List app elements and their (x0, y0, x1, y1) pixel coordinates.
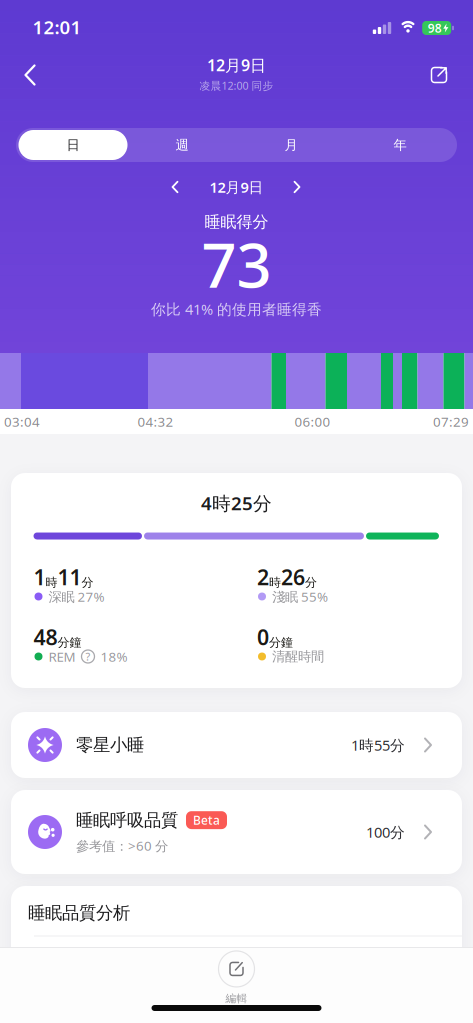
staticText: 1時55分 (351, 735, 405, 755)
staticText: 睡眠品質分析 (28, 902, 130, 924)
staticText: 0分鐘 (257, 623, 293, 651)
staticText: 淺眠 55% (272, 588, 328, 605)
button[interactable]: Share (422, 58, 455, 91)
staticText: ? (85, 649, 90, 664)
button[interactable]: 睡眠呼吸品質 (11, 790, 462, 874)
staticText: 18% (100, 648, 127, 665)
staticText: 2時26分 (257, 563, 317, 591)
staticText: 深眠 27% (48, 588, 104, 605)
staticText: 12月9日 (209, 177, 263, 197)
staticText: 12:01 (32, 15, 81, 39)
button[interactable]: 編輯 (218, 951, 254, 1005)
staticText: 零星小睡 (76, 734, 144, 756)
button[interactable]: 年 (345, 130, 454, 160)
staticText: 睡眠呼吸品質 (76, 809, 178, 831)
staticText: 參考值：>60 分 (76, 837, 168, 854)
staticText: 06:00 (294, 413, 330, 430)
button[interactable]: 日 (18, 130, 127, 160)
staticText: 1時11分 (33, 563, 93, 591)
staticText: 週 (175, 137, 188, 153)
staticText: REM (48, 648, 75, 665)
staticText: 98 (428, 20, 442, 36)
staticText: 4時25分 (201, 491, 272, 515)
button[interactable]: Back (14, 54, 45, 95)
button[interactable]: REM 說明 (81, 650, 94, 663)
staticText: 04:32 (137, 413, 173, 430)
button[interactable]: 週 (127, 130, 236, 160)
staticText: 月 (284, 137, 297, 153)
button[interactable]: 零星小睡 (11, 712, 462, 778)
staticText: Beta (193, 812, 220, 828)
staticText: 12月9日 (207, 54, 266, 75)
staticText: 03:04 (4, 413, 40, 430)
staticText: 07:29 (433, 413, 469, 430)
staticText: 凌晨12:00 同步 (199, 78, 273, 93)
staticText: 日 (66, 137, 79, 153)
button[interactable]: 月 (236, 130, 345, 160)
button[interactable]: Next day (285, 173, 308, 201)
button[interactable]: Previous day (163, 173, 186, 201)
staticText: 你比 41% 的使用者睡得香 (151, 299, 322, 319)
staticText: 睡眠得分 (204, 212, 268, 232)
staticText: 清醒時間 (272, 648, 324, 665)
staticText: 100分 (366, 822, 405, 842)
staticText: 48分鐘 (33, 623, 81, 651)
staticText: 73 (201, 223, 271, 305)
staticText: 編輯 (225, 992, 247, 1005)
staticText: 年 (393, 137, 406, 153)
